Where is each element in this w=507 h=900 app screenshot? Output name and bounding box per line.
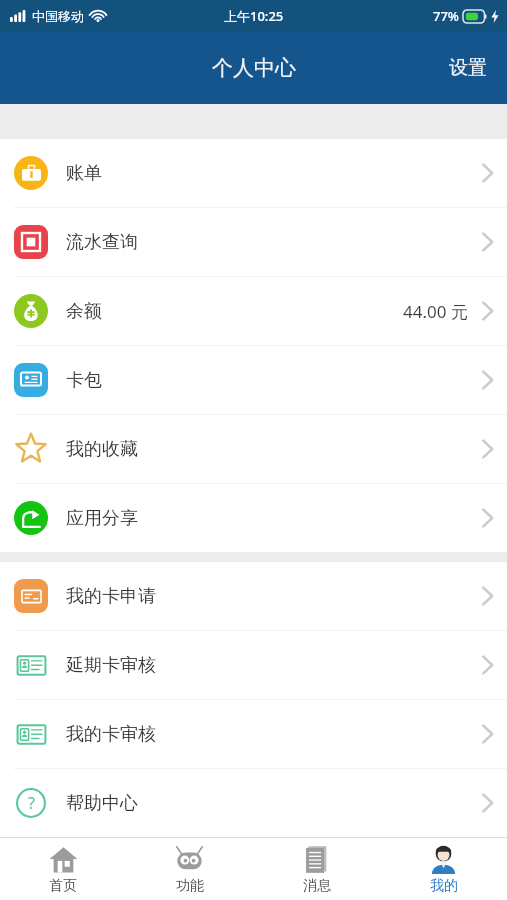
- staticText: 中国移动: [32, 8, 84, 24]
- staticText: 功能: [176, 877, 204, 895]
- button[interactable]: 账单: [0, 139, 507, 207]
- staticText: 44.00 元: [403, 300, 468, 323]
- staticText: 设置: [449, 56, 487, 80]
- staticText: 上午10:25: [224, 7, 284, 25]
- staticText: 应用分享: [66, 507, 138, 530]
- button[interactable]: 应用分享: [0, 484, 507, 552]
- staticText: 首页: [49, 877, 77, 895]
- staticText: 我的收藏: [66, 438, 138, 461]
- staticText: 卡包: [66, 369, 102, 392]
- button[interactable]: 卡包: [0, 346, 507, 414]
- button[interactable]: 设置: [429, 42, 507, 94]
- staticText: 延期卡审核: [66, 654, 156, 677]
- button[interactable]: 我的卡申请: [0, 562, 507, 630]
- staticText: 账单: [66, 162, 102, 185]
- button[interactable]: 首页: [0, 838, 126, 900]
- button[interactable]: 功能: [126, 838, 253, 900]
- button[interactable]: 我的: [380, 838, 507, 900]
- staticText: 流水查询: [66, 231, 138, 254]
- button[interactable]: ?: [0, 769, 507, 837]
- button[interactable]: 消息: [253, 838, 380, 900]
- staticText: 帮助中心: [66, 792, 138, 815]
- staticText: 我的卡审核: [66, 723, 156, 746]
- other: 我的: [429, 845, 458, 874]
- staticText: 余额: [66, 300, 102, 323]
- button[interactable]: 延期卡审核: [0, 631, 507, 699]
- staticText: 77%: [433, 7, 459, 25]
- button[interactable]: 我的收藏: [0, 415, 507, 483]
- staticText: 我的: [430, 877, 458, 895]
- staticText: ?: [28, 792, 35, 814]
- button[interactable]: 余额: [0, 277, 507, 345]
- staticText: 我的卡申请: [66, 585, 156, 608]
- button[interactable]: 我的卡审核: [0, 700, 507, 768]
- staticText: 个人中心: [212, 55, 296, 81]
- button[interactable]: 流水查询: [0, 208, 507, 276]
- staticText: 消息: [303, 877, 331, 895]
